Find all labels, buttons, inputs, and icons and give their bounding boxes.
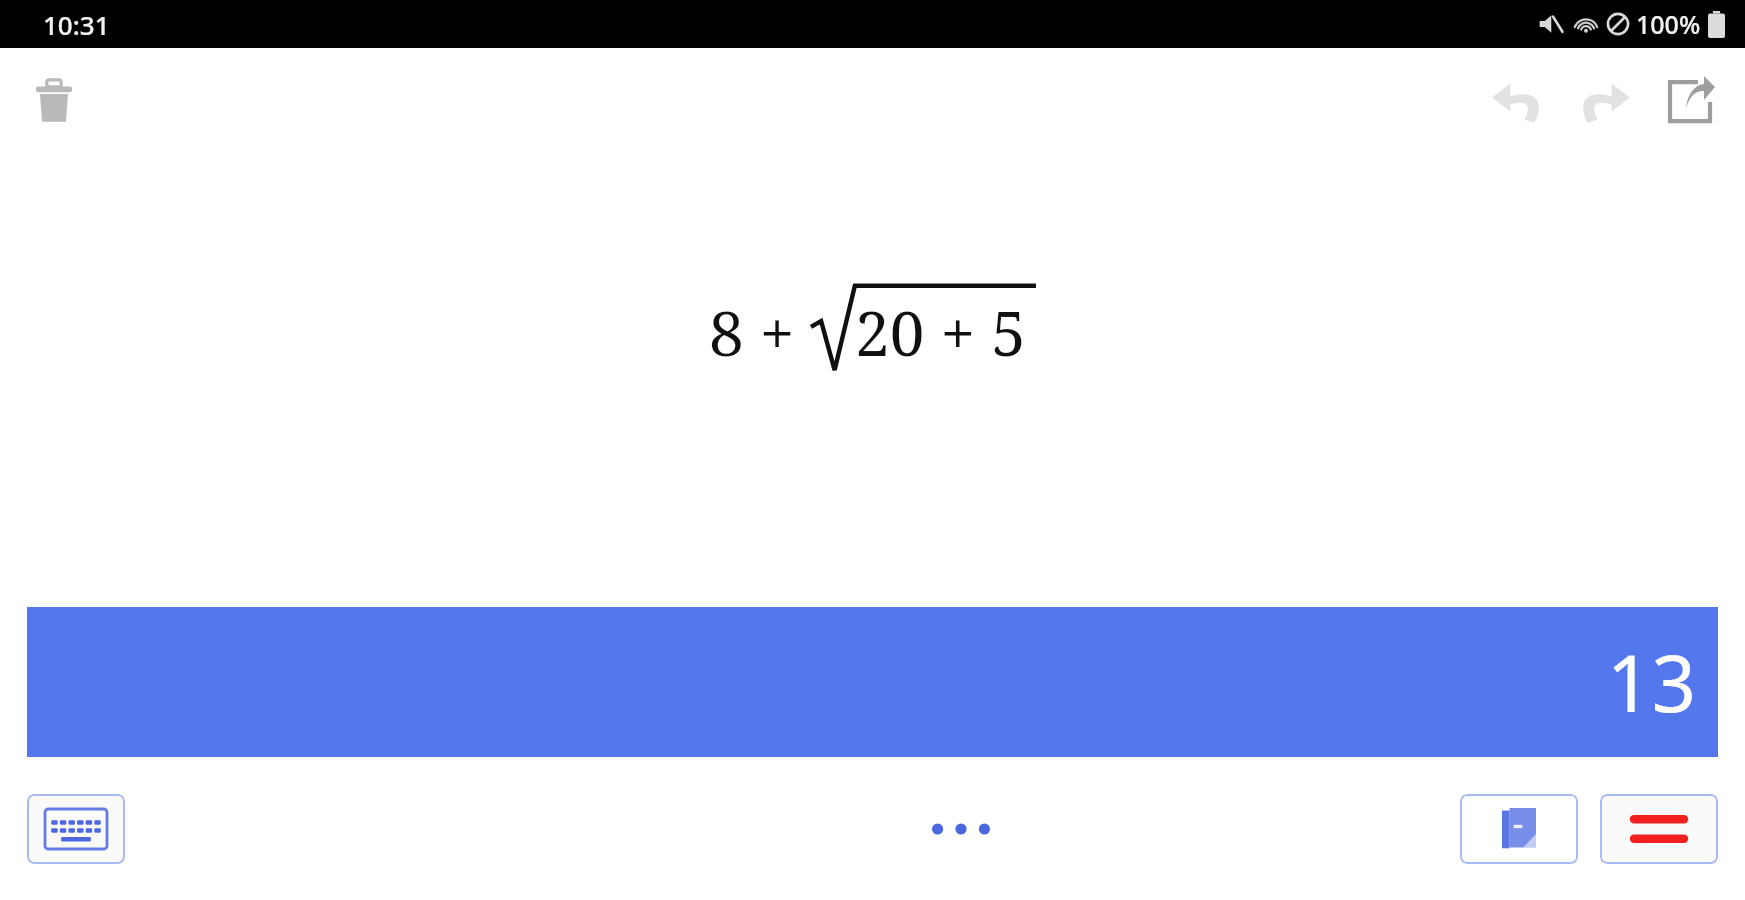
- staticText: 100%: [1636, 7, 1701, 41]
- button[interactable]: Delete: [16, 63, 92, 139]
- button[interactable]: Equals: [1600, 794, 1718, 864]
- staticText: 20 + 5: [855, 290, 1026, 374]
- staticText: 10:31: [43, 7, 110, 42]
- staticText: 13: [1606, 629, 1696, 735]
- button[interactable]: Redo: [1561, 58, 1647, 144]
- button[interactable]: Keyboard: [27, 794, 125, 864]
- button[interactable]: More options: [913, 794, 1009, 864]
- button[interactable]: Share: [1647, 58, 1733, 144]
- button[interactable]: 13: [27, 607, 1718, 757]
- staticText: 8 +: [709, 290, 811, 374]
- button[interactable]: Notebook: [1460, 794, 1578, 864]
- button[interactable]: Undo: [1475, 58, 1561, 144]
